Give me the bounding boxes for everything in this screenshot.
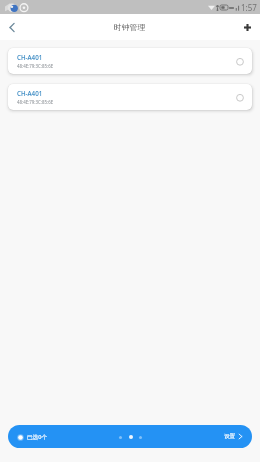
staticText: 时钟管理 xyxy=(114,22,146,32)
button[interactable]: Select device xyxy=(231,52,249,70)
button[interactable]: Back xyxy=(0,14,24,40)
button[interactable]: 设置 xyxy=(224,433,243,440)
staticText: 48:4E:79:3C:85:6E xyxy=(17,99,54,105)
staticText: 48:4E:79:3C:85:6E xyxy=(17,63,54,69)
staticText: CH-A401 xyxy=(17,53,43,61)
staticText: 1:57 xyxy=(241,2,257,13)
staticText: 已选0个 xyxy=(27,433,47,441)
button[interactable]: Add xyxy=(234,14,260,40)
button[interactable]: CH-A401 xyxy=(8,48,252,74)
button[interactable]: Select device xyxy=(231,88,249,106)
staticText: 设置 xyxy=(224,433,236,440)
staticText: CH-A401 xyxy=(17,89,43,97)
button[interactable]: CH-A401 xyxy=(8,84,252,110)
button[interactable]: 已选0个 xyxy=(17,433,47,441)
